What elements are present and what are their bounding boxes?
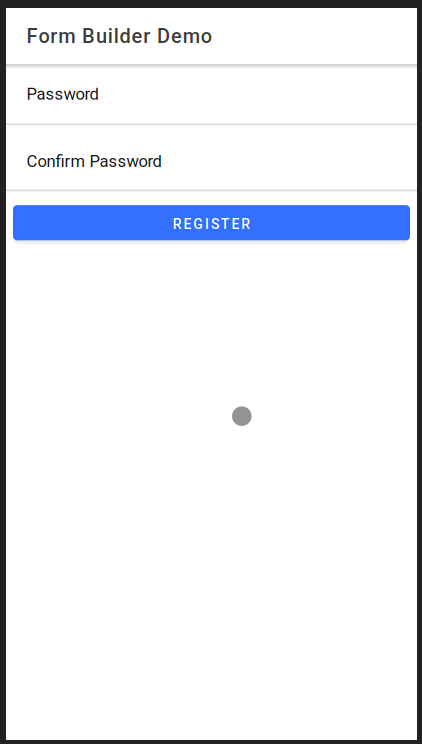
- staticText: Confirm Password: [27, 152, 162, 171]
- staticText: REGISTER: [173, 216, 250, 232]
- button[interactable]: REGISTER: [13, 205, 410, 240]
- staticText: Password: [27, 84, 99, 104]
- staticText: Form Builder Demo: [27, 24, 212, 48]
- button[interactable]: Password: [6, 64, 417, 125]
- button[interactable]: Confirm Password: [6, 125, 417, 191]
